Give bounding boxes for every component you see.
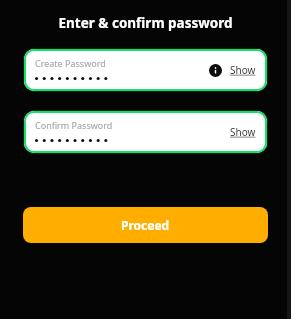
button[interactable]: Show [229,61,257,79]
staticText: Proceed [121,217,170,233]
staticText: Create Password [35,57,106,69]
button[interactable]: Confirm Password [24,111,267,153]
button[interactable]: Create Password [24,49,267,91]
staticText: Show [230,63,256,77]
staticText: Show [230,125,256,139]
button[interactable]: Show [229,123,257,141]
staticText: Enter & confirm password [23,14,268,32]
button[interactable]: Proceed [23,207,268,243]
staticText: Confirm Password [35,119,113,131]
button[interactable]: Password information [209,64,222,77]
